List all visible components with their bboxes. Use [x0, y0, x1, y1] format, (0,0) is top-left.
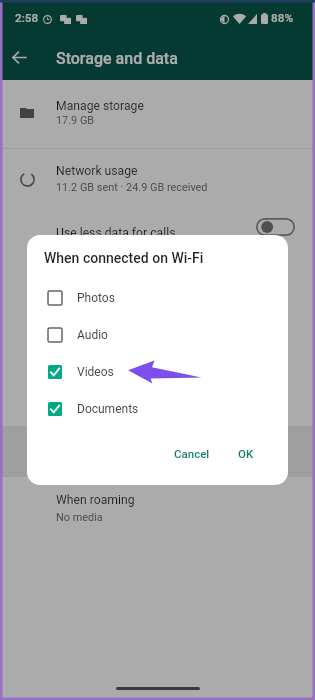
- button[interactable]: Audio: [27, 317, 288, 354]
- staticText: Storage and data: [56, 49, 178, 68]
- staticText: 2:58: [15, 11, 39, 25]
- button[interactable]: Manage storage: [0, 80, 315, 148]
- staticText: Audio: [77, 328, 108, 342]
- staticText: OK: [238, 447, 254, 460]
- staticText: Documents: [77, 402, 139, 416]
- button[interactable]: Cancel: [168, 442, 216, 465]
- button[interactable]: Videos: [27, 354, 288, 391]
- button[interactable]: Media upload quality: [0, 250, 315, 307]
- staticText: 88%: [271, 11, 294, 25]
- staticText: 11.2 GB sent · 24.9 GB received: [56, 181, 208, 194]
- button[interactable]: Documents: [27, 391, 288, 428]
- button[interactable]: When roaming: [0, 477, 315, 534]
- staticText: 17.9 GB: [56, 114, 95, 127]
- staticText: Use less data for calls: [56, 226, 176, 240]
- staticText: When connected on Wi-Fi: [44, 250, 204, 266]
- button[interactable]: Back: [2, 40, 36, 74]
- staticText: Cancel: [174, 447, 210, 460]
- staticText: Photos: [77, 291, 115, 305]
- button[interactable]: Network usage: [0, 149, 315, 206]
- staticText: Manage storage: [56, 99, 144, 113]
- staticText: No media: [56, 511, 103, 524]
- staticText: Videos: [77, 365, 114, 379]
- staticText: When roaming: [56, 493, 135, 507]
- button[interactable]: Use less data for calls: [0, 206, 315, 250]
- staticText: Standard quality: [56, 281, 135, 294]
- button[interactable]: OK: [232, 442, 260, 465]
- button[interactable]: Use less data for calls toggle: [254, 214, 297, 240]
- button[interactable]: Photos: [27, 280, 288, 317]
- staticText: Network usage: [56, 164, 138, 178]
